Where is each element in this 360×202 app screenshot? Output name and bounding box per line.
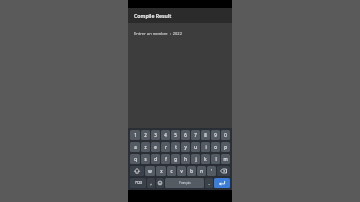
button[interactable]: l bbox=[211, 154, 220, 164]
button[interactable]: . bbox=[205, 178, 213, 188]
staticText: j bbox=[195, 156, 197, 162]
button[interactable]: 4 bbox=[161, 130, 170, 140]
button[interactable]: 9 bbox=[211, 130, 220, 140]
button[interactable]: Enter bbox=[214, 178, 230, 188]
staticText: z bbox=[144, 144, 147, 150]
staticText: ?123 bbox=[135, 181, 142, 185]
button[interactable]: v bbox=[177, 166, 186, 176]
button[interactable]: 2 bbox=[141, 130, 150, 140]
button[interactable]: 5 bbox=[171, 130, 180, 140]
button[interactable]: b bbox=[187, 166, 196, 176]
staticText: 6 bbox=[184, 132, 187, 138]
staticText: 5 bbox=[174, 132, 177, 138]
staticText: e bbox=[154, 144, 157, 150]
staticText: v bbox=[180, 168, 183, 174]
button[interactable]: t bbox=[171, 142, 180, 152]
button[interactable]: m bbox=[221, 154, 230, 164]
button[interactable]: f bbox=[161, 154, 170, 164]
button[interactable]: w bbox=[145, 166, 155, 176]
button[interactable]: i bbox=[201, 142, 210, 152]
button[interactable]: u bbox=[191, 142, 200, 152]
staticText: n bbox=[200, 168, 203, 174]
button[interactable]: ' bbox=[207, 166, 216, 176]
staticText: o bbox=[214, 144, 217, 150]
button[interactable]: q bbox=[130, 154, 140, 164]
button[interactable]: Compile Result bbox=[128, 8, 232, 23]
button[interactable]: 7 bbox=[191, 130, 200, 140]
staticText: 7 bbox=[194, 132, 197, 138]
button[interactable]: a bbox=[130, 142, 140, 152]
button[interactable]: j bbox=[191, 154, 200, 164]
staticText: 2 bbox=[144, 132, 147, 138]
button[interactable]: c bbox=[167, 166, 176, 176]
button[interactable]: 8 bbox=[201, 130, 210, 140]
button[interactable]: Shift bbox=[130, 166, 144, 176]
staticText: l bbox=[215, 156, 217, 162]
button[interactable]: p bbox=[221, 142, 230, 152]
staticText: k bbox=[204, 156, 207, 162]
staticText: 1 bbox=[134, 132, 137, 138]
staticText: 8 bbox=[204, 132, 207, 138]
staticText: 4 bbox=[164, 132, 167, 138]
button[interactable]: e bbox=[151, 142, 160, 152]
button[interactable]: g bbox=[171, 154, 180, 164]
staticText: t bbox=[175, 144, 177, 150]
button[interactable]: d bbox=[151, 154, 160, 164]
button[interactable]: k bbox=[201, 154, 210, 164]
staticText: p bbox=[224, 144, 227, 150]
staticText: g bbox=[174, 156, 177, 162]
staticText: . bbox=[208, 180, 210, 186]
staticText: i bbox=[205, 144, 207, 150]
staticText: ' bbox=[211, 168, 212, 174]
staticText: 0 bbox=[224, 132, 227, 138]
button[interactable]: n bbox=[197, 166, 206, 176]
button[interactable]: 0 bbox=[221, 130, 230, 140]
button[interactable]: y bbox=[181, 142, 190, 152]
staticText: d bbox=[154, 156, 157, 162]
staticText: 9 bbox=[214, 132, 217, 138]
staticText: b bbox=[190, 168, 193, 174]
button[interactable]: 1 bbox=[130, 130, 140, 140]
button[interactable]: ?123 bbox=[130, 178, 146, 188]
button[interactable]: Emoji bbox=[156, 178, 164, 188]
staticText: m bbox=[223, 156, 228, 162]
button[interactable]: Français bbox=[165, 178, 204, 188]
staticText: h bbox=[184, 156, 187, 162]
button[interactable]: Backspace bbox=[217, 166, 230, 176]
staticText: Français bbox=[179, 181, 191, 185]
staticText: f bbox=[165, 156, 167, 162]
button[interactable]: x bbox=[156, 166, 166, 176]
button[interactable]: r bbox=[161, 142, 170, 152]
staticText: Compile Result bbox=[134, 12, 172, 19]
button[interactable]: z bbox=[141, 142, 150, 152]
staticText: r bbox=[165, 144, 167, 150]
staticText: 3 bbox=[154, 132, 157, 138]
staticText: x bbox=[160, 168, 163, 174]
button[interactable]: 3 bbox=[151, 130, 160, 140]
staticText: q bbox=[134, 156, 137, 162]
staticText: y bbox=[184, 144, 187, 150]
button[interactable]: 6 bbox=[181, 130, 190, 140]
staticText: Entrer un nombre : 2022 bbox=[134, 31, 182, 36]
button[interactable]: o bbox=[211, 142, 220, 152]
staticText: c bbox=[170, 168, 173, 174]
button[interactable]: h bbox=[181, 154, 190, 164]
button[interactable]: s bbox=[141, 154, 150, 164]
button[interactable]: , bbox=[147, 178, 155, 188]
staticText: a bbox=[134, 144, 137, 150]
staticText: u bbox=[194, 144, 197, 150]
staticText: , bbox=[150, 180, 152, 186]
staticText: w bbox=[148, 168, 152, 174]
staticText: s bbox=[144, 156, 147, 162]
